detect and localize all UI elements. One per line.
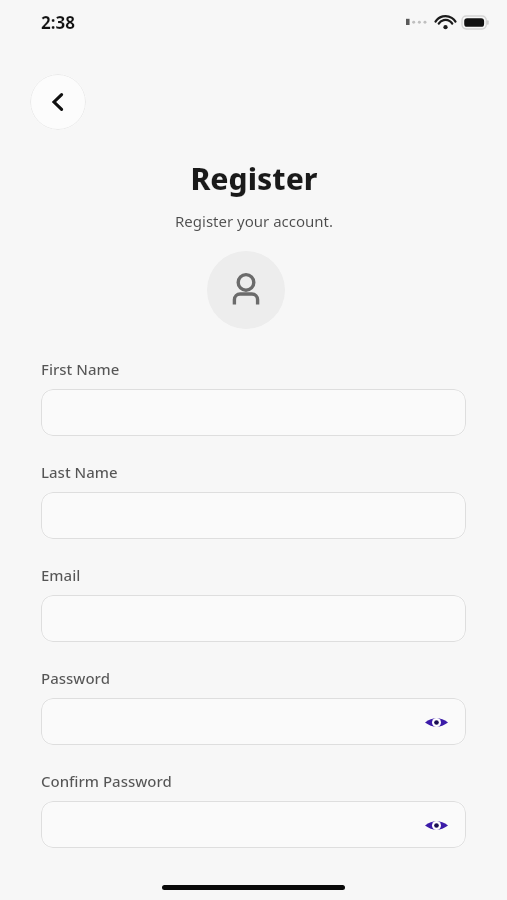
staticText: Confirm Password: [41, 771, 172, 791]
button[interactable]: [41, 595, 466, 642]
staticText: Register: [190, 158, 318, 199]
staticText: Email: [41, 565, 81, 585]
button[interactable]: [41, 389, 466, 436]
staticText: Last Name: [41, 462, 118, 482]
staticText: 2:38: [41, 11, 75, 34]
button[interactable]: Show password: [41, 801, 466, 848]
button[interactable]: Back: [30, 74, 86, 130]
button[interactable]: Profile photo: [207, 251, 285, 329]
button[interactable]: Show password: [422, 708, 450, 736]
button[interactable]: Show password: [422, 811, 450, 839]
staticText: Password: [41, 668, 110, 688]
staticText: First Name: [41, 359, 120, 379]
button[interactable]: [41, 492, 466, 539]
staticText: Register your account.: [175, 211, 333, 231]
button[interactable]: Show password: [41, 698, 466, 745]
